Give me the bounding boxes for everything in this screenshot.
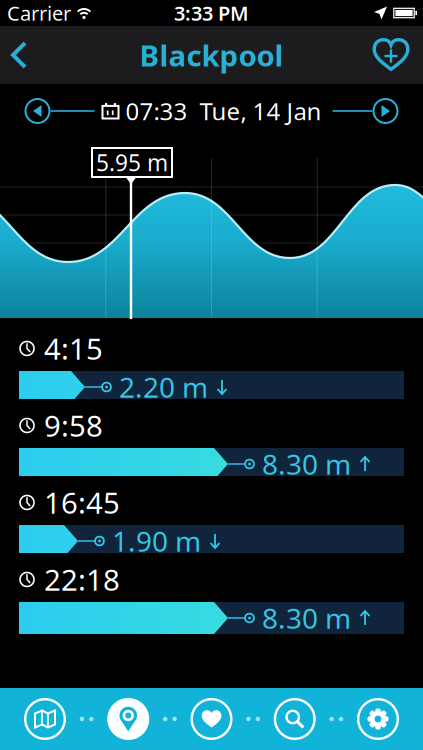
button[interactable]: Locations [107,698,149,740]
staticText: 1.90 m [112,522,201,560]
button[interactable]: Previous day [24,98,50,124]
staticText: 22:18 [44,560,120,599]
staticText: 2.20 m [119,368,208,406]
staticText: Blackpool [139,35,283,74]
button[interactable]: Back [0,27,28,83]
staticText: 3:33 PM [174,0,249,26]
button[interactable]: Map [24,698,66,740]
button[interactable]: Favourites [190,698,232,740]
staticText: 5.95 m [96,147,168,177]
button[interactable]: Search [274,698,316,740]
staticText: 9:58 [44,406,103,445]
staticText: 8.30 m [262,445,351,483]
button[interactable]: Add to favourites [373,26,423,83]
button[interactable]: Settings [357,698,399,740]
staticText: Carrier [7,0,71,26]
staticText: 16:45 [44,483,120,522]
button[interactable]: Next day [372,98,398,124]
staticText: 07:33 [125,95,187,127]
staticText: 8.30 m [262,599,351,637]
staticText: 4:15 [44,329,103,368]
staticText: Tue, 14 Jan [199,95,321,127]
